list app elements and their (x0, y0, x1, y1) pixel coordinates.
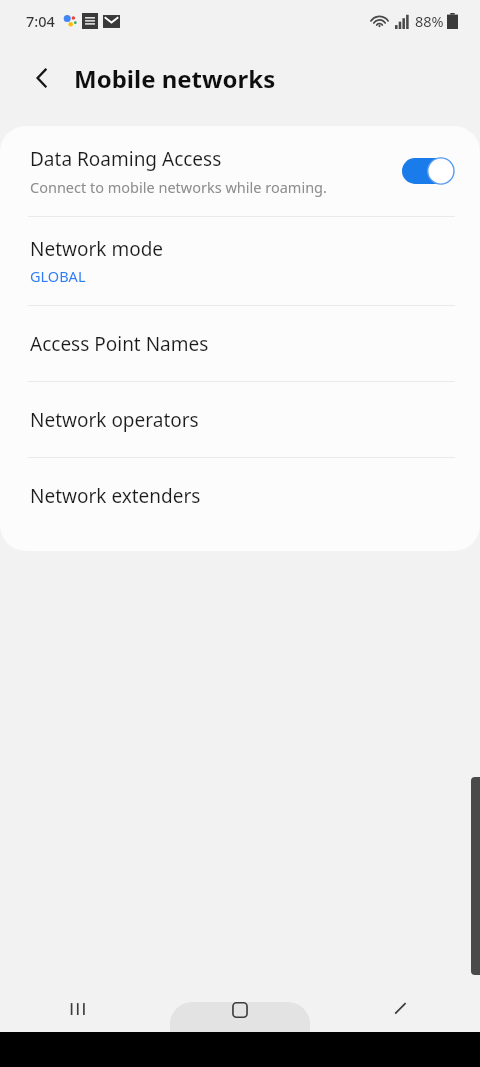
staticText: Connect to mobile networks while roaming… (30, 177, 327, 197)
button[interactable]: Network operators (0, 382, 480, 457)
staticText: Data Roaming Access (30, 146, 222, 172)
staticText: Mobile networks (74, 62, 276, 95)
staticText: Network operators (30, 407, 199, 433)
button[interactable]: Data Roaming Access toggle (402, 157, 454, 185)
staticText: Network extenders (30, 483, 201, 509)
staticText: 88% (415, 11, 444, 31)
button[interactable]: Home (160, 980, 320, 1032)
staticText: Access Point Names (30, 331, 209, 357)
button[interactable]: Access Point Names (0, 306, 480, 381)
button[interactable]: Recents (0, 980, 160, 1032)
staticText: 7:04 (26, 11, 55, 31)
staticText: GLOBAL (30, 266, 86, 286)
button[interactable]: Network mode (0, 217, 480, 305)
button[interactable]: Back (320, 980, 480, 1032)
button[interactable]: Back (22, 58, 62, 98)
button[interactable]: Data Roaming Access (0, 126, 480, 216)
button[interactable]: Network extenders (0, 458, 480, 533)
staticText: Network mode (30, 236, 164, 262)
